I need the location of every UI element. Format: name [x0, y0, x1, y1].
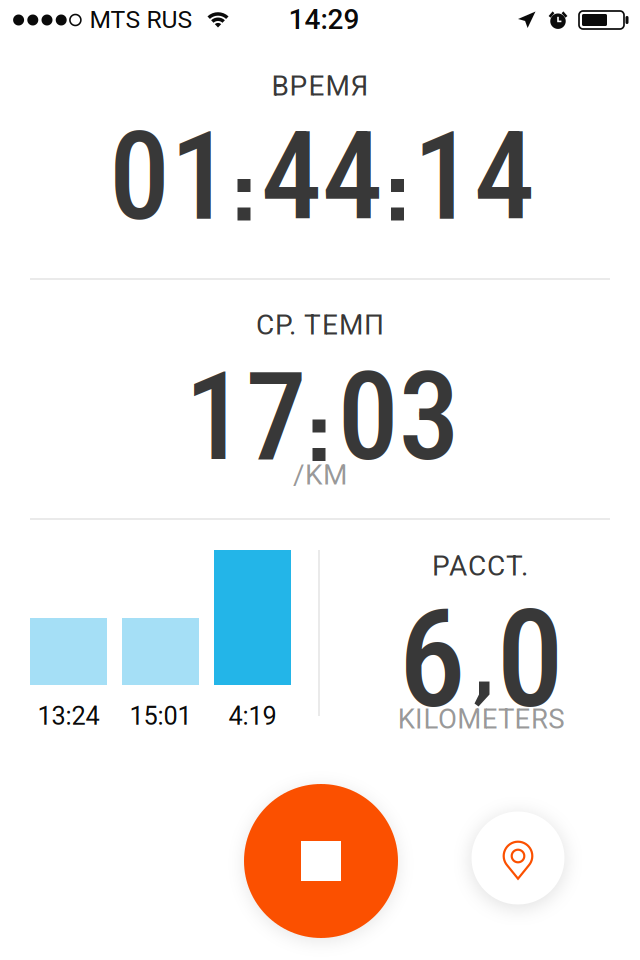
staticText: РАССТ.	[432, 550, 528, 582]
staticText: MTS RUS	[89, 5, 192, 34]
staticText: 4:19	[228, 701, 276, 731]
staticText: 6 0	[398, 581, 563, 739]
staticText: 14:29	[288, 3, 359, 36]
staticText: СР. ТЕМП	[256, 309, 384, 341]
staticText: KILOMETERS	[398, 703, 564, 735]
button[interactable]: Stop workout	[244, 784, 398, 938]
staticText: 13:24	[37, 701, 99, 731]
staticText: 15:01	[129, 701, 191, 731]
staticText: ВРЕМЯ	[271, 70, 368, 102]
button[interactable]: Map	[471, 811, 564, 904]
staticText: /KM	[293, 459, 347, 491]
staticText: 01 44 14	[109, 105, 535, 248]
staticText: 17 03	[184, 345, 459, 489]
